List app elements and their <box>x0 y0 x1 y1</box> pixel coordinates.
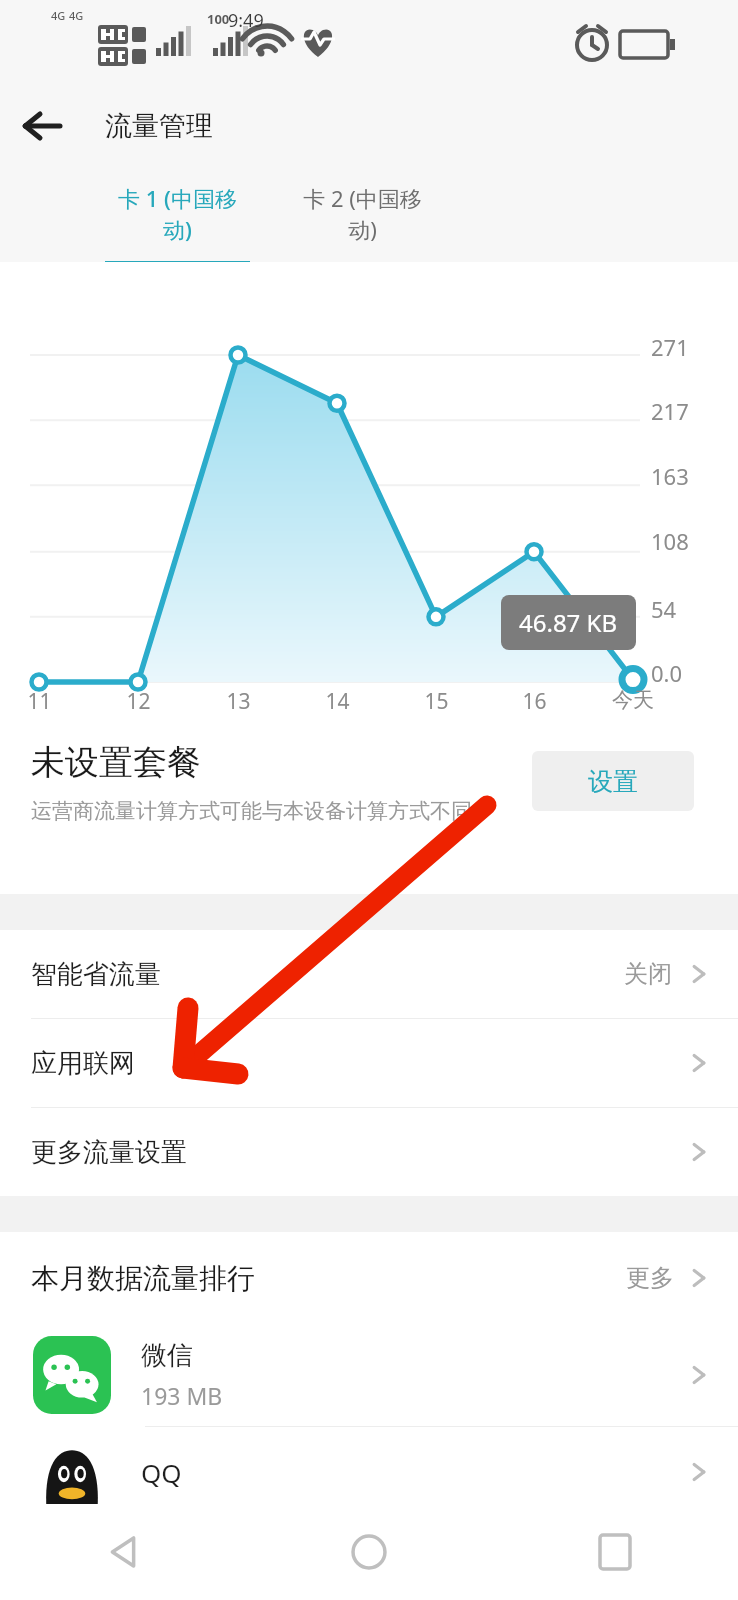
staticText: QQ <box>141 1455 182 1490</box>
staticText: 更多流量设置 <box>31 1136 187 1169</box>
button[interactable]: 返回 <box>0 1504 246 1600</box>
staticText: 16 <box>522 687 547 716</box>
button[interactable]: QQ <box>0 1427 738 1517</box>
staticText: 15 <box>424 687 449 716</box>
staticText: 0.0 <box>651 658 683 688</box>
staticText: 13 <box>226 687 251 716</box>
staticText: 本月数据流量排行 <box>31 1261 255 1296</box>
staticText: 193 MB <box>141 1380 223 1411</box>
staticText: 智能省流量 <box>31 958 161 991</box>
staticText: 108 <box>651 526 689 556</box>
button[interactable]: 应用联网 <box>0 1019 738 1108</box>
staticText: 运营商流量计算方式可能与本设备计算方式不同。 <box>31 798 493 824</box>
staticText: 163 <box>651 461 689 491</box>
staticText: 12 <box>126 687 151 716</box>
button[interactable]: 设置 <box>532 751 694 811</box>
staticText: 微信 <box>141 1339 193 1372</box>
staticText: 应用联网 <box>31 1047 135 1080</box>
button[interactable]: 最近任务 <box>492 1504 738 1600</box>
staticText: 11 <box>27 687 52 716</box>
button[interactable]: 卡 2 (中国移动) <box>290 168 435 262</box>
staticText: 46.87 KB <box>519 606 618 639</box>
staticText: 271 <box>651 332 689 362</box>
staticText: 54 <box>651 594 677 624</box>
staticText: 设置 <box>588 766 638 797</box>
button[interactable]: 微信 <box>0 1324 738 1427</box>
staticText: 4G <box>69 8 84 23</box>
button[interactable]: 返回 <box>0 84 84 168</box>
staticText: 4G <box>51 8 66 23</box>
staticText: 卡 1 (中国移动) <box>105 183 250 244</box>
staticText: 未设置套餐 <box>31 741 201 784</box>
button[interactable]: 主页 <box>246 1504 492 1600</box>
button[interactable]: 智能省流量 <box>0 930 738 1019</box>
staticText: 关闭 <box>624 959 672 989</box>
staticText: 14 <box>325 687 350 716</box>
staticText: 卡 2 (中国移动) <box>290 183 435 244</box>
staticText: 100 <box>207 10 230 28</box>
staticText: 流量管理 <box>105 109 213 143</box>
button[interactable]: 本月数据流量排行 <box>31 1232 710 1324</box>
staticText: 9:49 <box>228 8 264 33</box>
button[interactable]: 卡 1 (中国移动) <box>105 168 250 262</box>
button[interactable]: 更多流量设置 <box>0 1108 738 1196</box>
staticText: 今天 <box>612 687 654 713</box>
staticText: 217 <box>651 396 689 426</box>
staticText: 更多 <box>626 1263 674 1293</box>
